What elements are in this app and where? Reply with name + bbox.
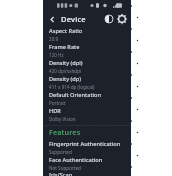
staticText: Fingerprint Authentication xyxy=(49,140,121,148)
button[interactable]: Iris/Scan xyxy=(43,171,131,176)
staticText: Supported xyxy=(49,149,72,155)
button[interactable]: HDR xyxy=(43,106,131,122)
staticText: Features xyxy=(49,128,81,138)
staticText: HDR xyxy=(49,107,61,115)
staticText: 20:9 xyxy=(49,36,59,42)
button[interactable]: Toggle theme xyxy=(103,13,115,25)
button[interactable]: Fingerprint Authentication xyxy=(43,139,131,155)
button[interactable]: Density (dp) xyxy=(43,74,131,90)
staticText: Face Authentication xyxy=(49,156,103,164)
staticText: Density (dpi) xyxy=(49,59,83,67)
staticText: Not Supported xyxy=(49,165,81,171)
staticText: 411 x 914 dp (logical) xyxy=(49,84,95,90)
staticText: 420 dpi/xxhdpi xyxy=(49,68,82,74)
button[interactable]: Settings xyxy=(116,13,128,25)
staticText: Dolby Vision xyxy=(49,116,76,122)
staticText: 120 Hz xyxy=(49,52,64,58)
button[interactable]: Density (dpi) xyxy=(43,58,131,74)
button[interactable]: Aspect Ratio xyxy=(43,26,131,42)
staticText: Device xyxy=(61,14,86,24)
button[interactable]: Back xyxy=(46,13,58,25)
button[interactable]: Face Authentication xyxy=(43,155,131,171)
staticText: Iris/Scan xyxy=(49,171,73,176)
staticText: Frame Rate xyxy=(49,43,80,51)
staticText: Portrait xyxy=(49,100,66,106)
staticText: Density (dp) xyxy=(49,75,82,83)
staticText: Default Orientation xyxy=(49,91,102,99)
staticText: Aspect Ratio xyxy=(49,27,83,35)
button[interactable]: Frame Rate xyxy=(43,42,131,58)
button[interactable]: Default Orientation xyxy=(43,90,131,106)
